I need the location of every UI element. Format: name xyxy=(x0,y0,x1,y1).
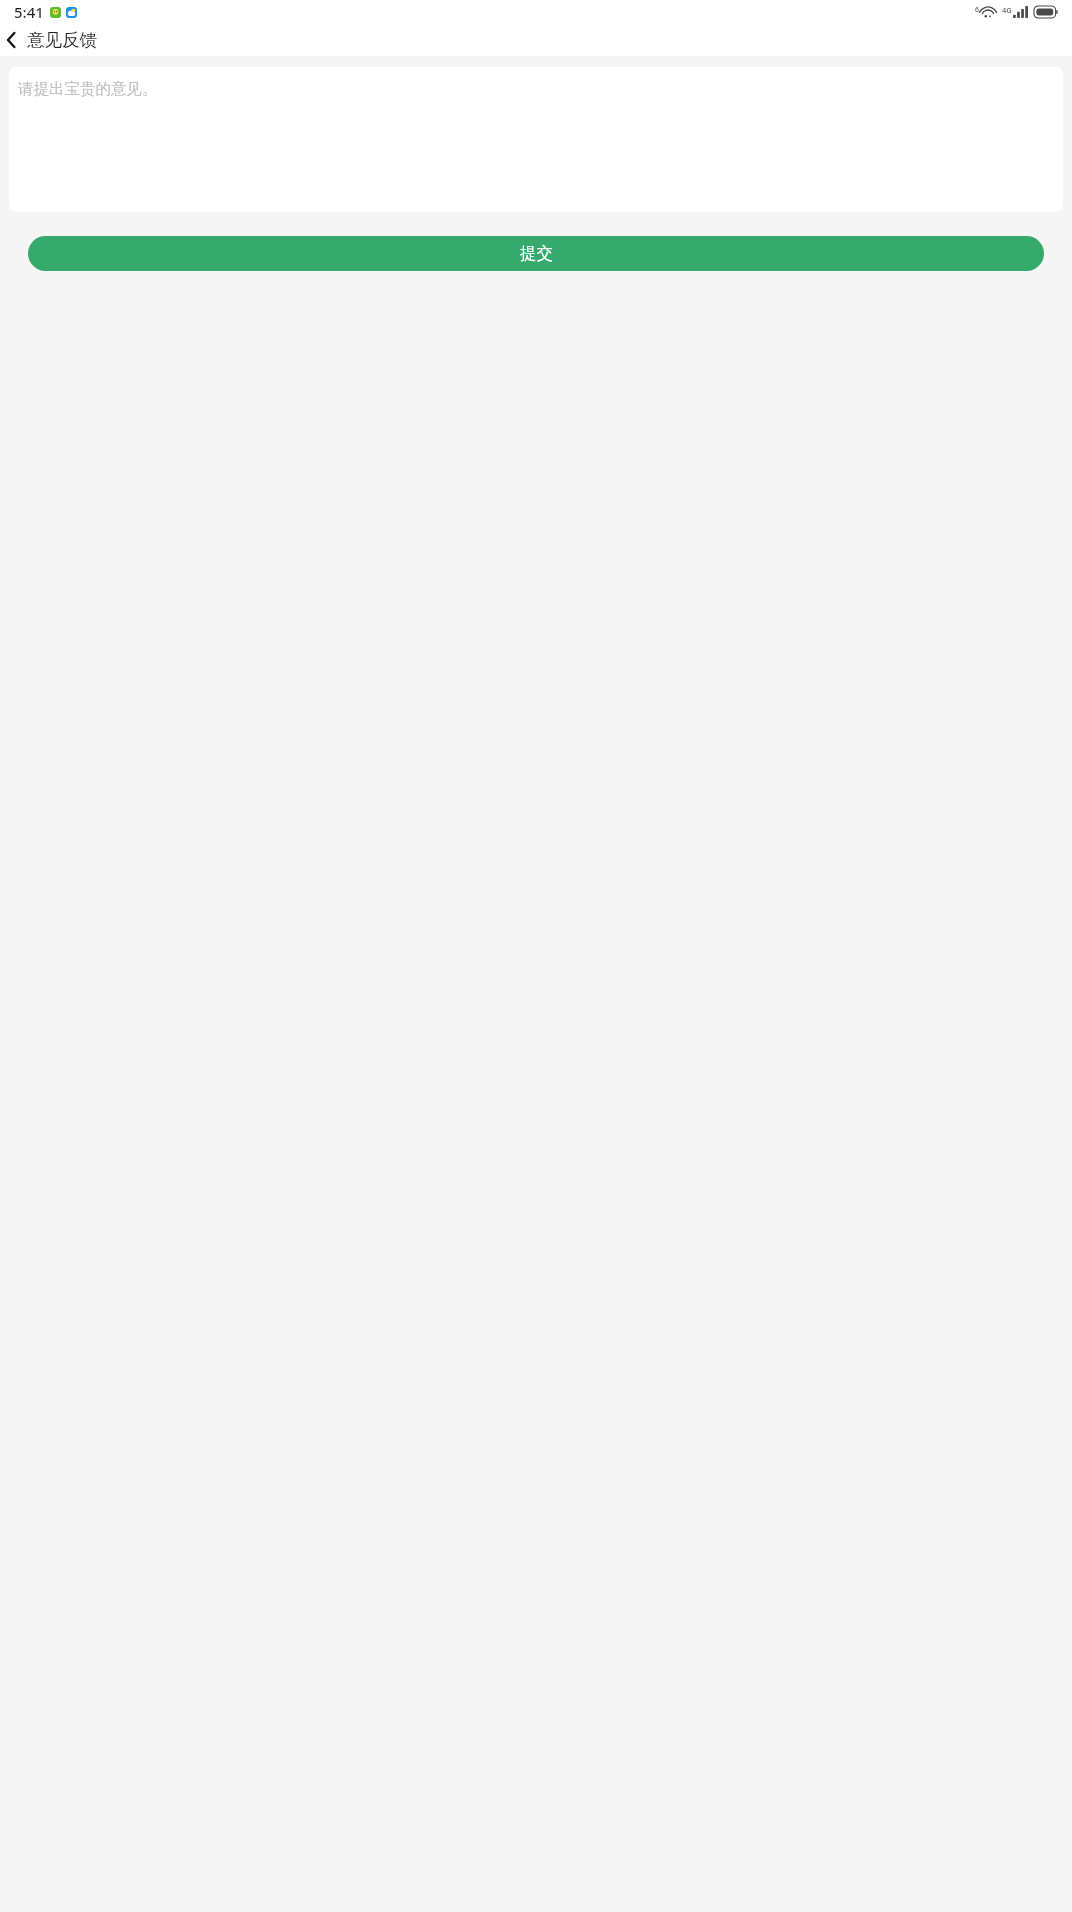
staticText: 提交 xyxy=(520,243,553,264)
staticText: 6 xyxy=(975,5,980,15)
staticText: 4G xyxy=(1002,5,1012,15)
staticText: 5:41 xyxy=(14,2,44,22)
button[interactable]: 请提出宝贵的意见。 xyxy=(9,67,1063,212)
button[interactable]: Back xyxy=(0,23,22,56)
staticText: 意见反馈 xyxy=(27,29,97,51)
staticText: 请提出宝贵的意见。 xyxy=(18,79,158,99)
button[interactable]: 提交 xyxy=(28,236,1044,271)
